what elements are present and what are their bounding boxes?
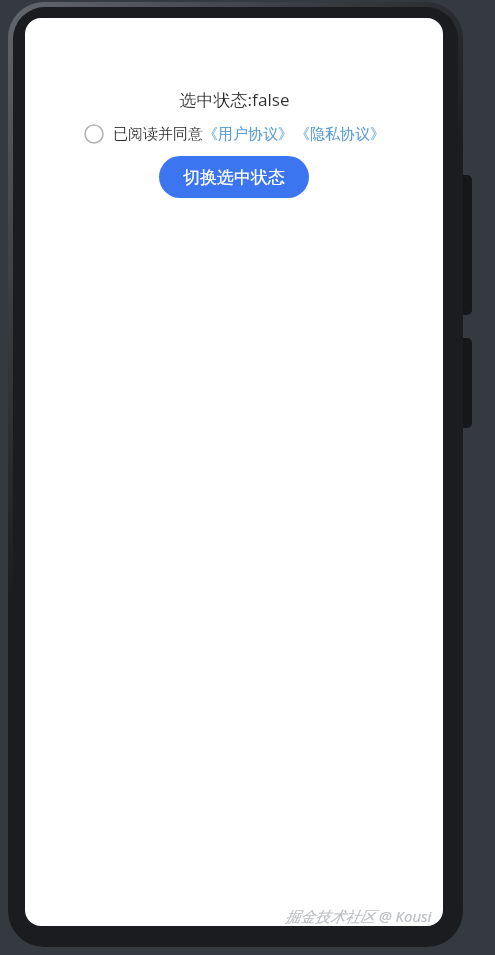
button[interactable]: 《用户协议》	[203, 125, 293, 144]
staticText: 切换选中状态	[183, 167, 285, 188]
other: Agreement checkbox, unchecked	[83, 123, 105, 145]
staticText: 选中状态:false	[179, 88, 290, 111]
button[interactable]: Agreement checkbox, unchecked	[81, 121, 387, 147]
button[interactable]: 切换选中状态	[159, 156, 309, 198]
staticText: 掘金技术社区 @ Kousi	[285, 906, 432, 926]
button[interactable]: 《隐私协议》	[295, 125, 385, 144]
staticText: 已阅读并同意	[113, 125, 203, 144]
